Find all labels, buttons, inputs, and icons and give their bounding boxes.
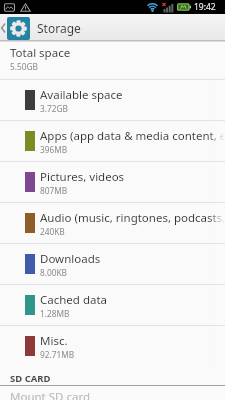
button[interactable]: Mount SD card <box>0 386 225 400</box>
staticText: Apps (app data & media content, etc.) <box>40 128 225 144</box>
staticText: 92.71MB <box>40 349 75 360</box>
staticText: Downloads <box>40 251 101 267</box>
staticText: 8.00KB <box>40 267 67 278</box>
button[interactable]: Pictures, videos <box>0 162 225 202</box>
staticText: Audio (music, ringtones, podcasts, etc.) <box>40 210 225 226</box>
button[interactable]: Total space <box>0 42 225 79</box>
staticText: 1.28MB <box>40 308 70 319</box>
staticText: Mount SD card <box>10 389 91 400</box>
staticText: 3.72GB <box>40 103 68 114</box>
staticText: Available space <box>40 87 123 103</box>
staticText: 396MB <box>40 144 68 155</box>
button[interactable]: Misc. <box>0 326 225 366</box>
button[interactable]: Storage <box>0 16 81 39</box>
button[interactable]: Cached data <box>0 285 225 325</box>
staticText: Total space <box>10 45 71 61</box>
button[interactable]: Downloads <box>0 244 225 284</box>
staticText: Cached data <box>40 292 108 308</box>
staticText: Misc. <box>40 333 68 349</box>
button[interactable]: Apps (app data & media content, etc.) <box>0 121 225 161</box>
staticText: 19:42 <box>194 1 216 13</box>
staticText: SD CARD <box>10 372 51 385</box>
staticText: 5.50GB <box>10 61 38 72</box>
button[interactable]: Available space <box>0 80 225 120</box>
staticText: Storage <box>37 20 81 36</box>
staticText: Pictures, videos <box>40 169 125 185</box>
staticText: 240KB <box>40 226 65 237</box>
button[interactable]: Audio (music, ringtones, podcasts, etc.) <box>0 203 225 243</box>
staticText: 807MB <box>40 185 68 196</box>
